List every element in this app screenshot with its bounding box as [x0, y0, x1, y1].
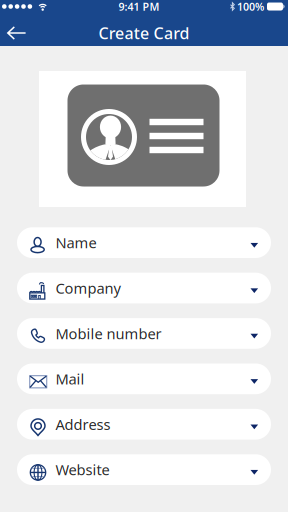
staticText: Mobile number	[55, 324, 161, 343]
button[interactable]: Name	[17, 227, 271, 258]
staticText: 9:41 PM	[119, 0, 160, 14]
staticText: Create Card	[98, 22, 189, 44]
button[interactable]: Mobile number	[17, 318, 271, 349]
staticText: Address	[55, 414, 110, 434]
button[interactable]: Company	[17, 273, 271, 303]
button[interactable]: Mail	[17, 363, 271, 394]
staticText: Name	[55, 233, 96, 252]
button[interactable]: Website	[17, 454, 271, 485]
staticText: Website	[55, 460, 109, 479]
button[interactable]: Back	[0, 18, 26, 47]
button[interactable]: Address	[17, 409, 271, 440]
staticText: Company	[55, 278, 120, 298]
staticText: 100%	[237, 0, 264, 14]
staticText: Mail	[55, 369, 84, 389]
